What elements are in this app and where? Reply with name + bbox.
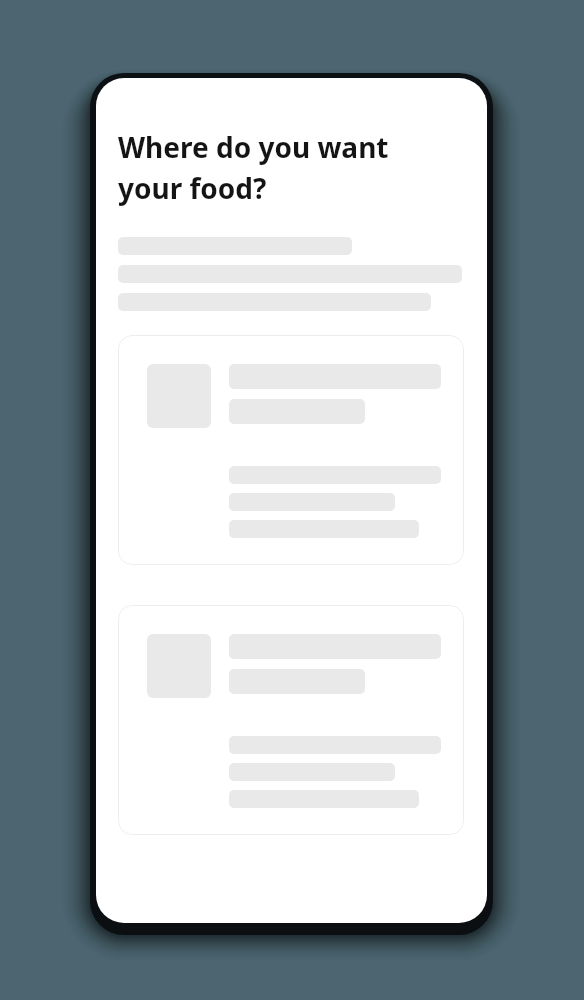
button[interactable]: Delivery option 1 — [118, 335, 464, 565]
button[interactable]: Delivery option 2 — [118, 605, 464, 835]
staticText: Where do you want your food? — [118, 128, 457, 207]
